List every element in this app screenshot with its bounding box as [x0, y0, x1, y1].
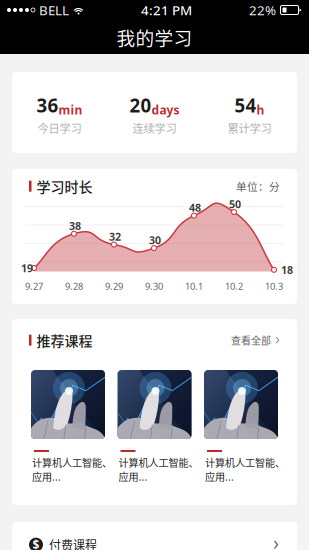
staticText: 54 — [234, 93, 256, 118]
staticText: BELL — [39, 1, 69, 19]
staticText: 19 — [21, 261, 33, 275]
staticText: 查看全部 — [231, 333, 271, 347]
staticText: 9.27 — [25, 280, 43, 292]
staticText: 48 — [189, 201, 201, 215]
staticText: 30 — [149, 233, 161, 247]
staticText: 推荐课程 — [36, 330, 92, 350]
staticText: 单位：分 — [236, 178, 280, 194]
staticText: h — [256, 102, 264, 118]
staticText: 计算机人工智能、 — [32, 455, 112, 470]
staticText: 我的学习 — [116, 23, 192, 50]
staticText: 学习时长 — [36, 176, 92, 196]
button[interactable]: 计算机人工智能、 — [31, 370, 105, 487]
staticText: 10.1 — [185, 280, 203, 292]
staticText: 连续学习 — [132, 120, 176, 136]
staticText: 38 — [69, 219, 81, 233]
staticText: 9.28 — [65, 280, 83, 292]
staticText: days — [151, 102, 179, 118]
staticText: 36 — [36, 93, 58, 118]
staticText: 32 — [109, 229, 121, 244]
staticText: 50 — [229, 197, 241, 211]
staticText: 22% — [249, 1, 276, 19]
staticText: 9.30 — [145, 280, 163, 292]
staticText: 10.3 — [265, 280, 283, 292]
staticText: 应用... — [118, 469, 147, 484]
staticText: $ — [32, 537, 39, 550]
staticText: 今日学习 — [37, 120, 81, 136]
staticText: 20 — [129, 93, 151, 118]
button[interactable]: 计算机人工智能、 — [117, 370, 191, 487]
button[interactable]: 计算机人工智能、 — [204, 370, 278, 487]
staticText: 付费课程 — [49, 536, 97, 550]
button[interactable]: $ — [12, 522, 297, 550]
staticText: 计算机人工智能、 — [205, 455, 285, 470]
staticText: 4:21 PM — [141, 1, 192, 19]
staticText: min — [58, 102, 82, 118]
staticText: 计算机人工智能、 — [118, 455, 198, 470]
staticText: 应用... — [205, 469, 234, 484]
staticText: 累计学习 — [227, 120, 271, 136]
button[interactable]: 查看全部 — [231, 333, 280, 347]
staticText: 10.2 — [225, 280, 243, 292]
staticText: 9.29 — [105, 280, 123, 292]
staticText: 应用... — [32, 469, 61, 484]
staticText: 18 — [281, 263, 293, 277]
